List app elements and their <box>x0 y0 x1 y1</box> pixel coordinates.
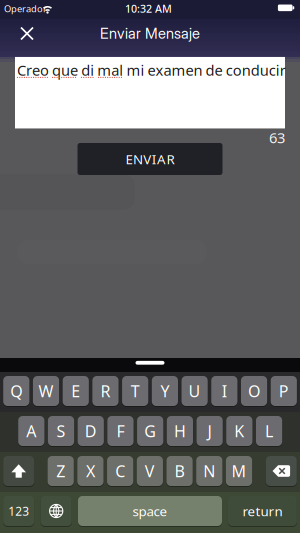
button[interactable]: Q <box>3 376 29 406</box>
button[interactable]: I <box>211 376 237 406</box>
staticText: A <box>157 150 166 168</box>
staticText: return <box>242 502 282 520</box>
staticText: M <box>231 460 246 482</box>
button[interactable]: C <box>107 456 133 486</box>
staticText: examen <box>147 60 202 80</box>
button[interactable]: Borrar <box>266 456 297 486</box>
button[interactable]: Z <box>48 456 74 486</box>
button[interactable]: A <box>18 416 44 446</box>
staticText: V <box>145 460 155 482</box>
staticText: space <box>132 502 167 520</box>
button[interactable]: D <box>78 416 104 446</box>
staticText: L <box>265 420 273 442</box>
staticText: E <box>125 150 132 168</box>
button[interactable]: M <box>226 456 252 486</box>
staticText: H <box>174 420 186 442</box>
staticText: W <box>38 380 53 402</box>
staticText: V <box>143 150 151 168</box>
staticText: N <box>203 460 215 482</box>
staticText: Z <box>56 460 65 482</box>
staticText: Creo <box>17 60 49 80</box>
button[interactable]: space <box>78 496 222 526</box>
button[interactable]: P <box>271 376 297 406</box>
staticText: mi <box>126 60 144 80</box>
button[interactable]: J <box>196 416 223 446</box>
staticText: E <box>71 380 80 402</box>
button[interactable]: E <box>77 143 222 175</box>
button[interactable]: H <box>167 416 193 446</box>
button[interactable]: U <box>181 376 208 406</box>
staticText: di <box>81 60 94 80</box>
button[interactable]: Y <box>152 376 178 406</box>
staticText: P <box>279 380 289 402</box>
staticText: X <box>86 460 95 482</box>
staticText: mal <box>97 60 123 80</box>
staticText: Q <box>10 380 22 402</box>
staticText: 10:32 AM <box>125 2 172 16</box>
button[interactable]: X <box>77 456 103 486</box>
staticText: G <box>144 420 156 442</box>
staticText: I <box>222 380 227 402</box>
button[interactable]: S <box>48 416 74 446</box>
button[interactable]: R <box>92 376 119 406</box>
staticText: Enviar Mensaje <box>100 25 200 42</box>
staticText: J <box>208 420 212 442</box>
button[interactable]: K <box>226 416 252 446</box>
staticText: R <box>166 150 174 168</box>
staticText: S <box>56 420 65 442</box>
staticText: Operador <box>4 2 47 15</box>
staticText: F <box>116 420 124 442</box>
staticText: conducir <box>226 60 286 80</box>
button[interactable]: W <box>33 376 59 406</box>
button[interactable]: Cerrar <box>12 19 41 48</box>
button[interactable]: G <box>137 416 163 446</box>
staticText: T <box>131 380 140 402</box>
button[interactable]: Mostrar sugerencias <box>135 361 164 365</box>
staticText: I <box>152 150 157 168</box>
staticText: de <box>206 60 223 80</box>
button[interactable]: Mayúsculas <box>3 456 34 486</box>
staticText: O <box>248 380 260 402</box>
button[interactable]: return <box>228 496 297 526</box>
button[interactable]: F <box>107 416 134 446</box>
staticText: C <box>115 460 125 482</box>
button[interactable]: 123 <box>3 496 34 526</box>
button[interactable]: N <box>196 456 222 486</box>
staticText: K <box>234 420 244 442</box>
button[interactable]: B <box>166 456 193 486</box>
button[interactable]: Siguiente teclado <box>41 496 72 526</box>
button[interactable]: V <box>137 456 163 486</box>
button[interactable]: O <box>241 376 267 406</box>
staticText: N <box>133 150 143 168</box>
button[interactable]: E <box>63 376 89 406</box>
staticText: D <box>85 420 97 442</box>
staticText: 63 <box>269 128 285 147</box>
staticText: R <box>100 380 110 402</box>
staticText: 123 <box>8 503 29 519</box>
staticText: que <box>52 60 78 80</box>
staticText: Y <box>160 380 169 402</box>
staticText: B <box>175 460 185 482</box>
button[interactable]: T <box>122 376 148 406</box>
staticText: U <box>189 380 201 402</box>
staticText: A <box>26 420 36 442</box>
button[interactable]: Mensaje <box>15 57 285 128</box>
button[interactable]: L <box>256 416 282 446</box>
